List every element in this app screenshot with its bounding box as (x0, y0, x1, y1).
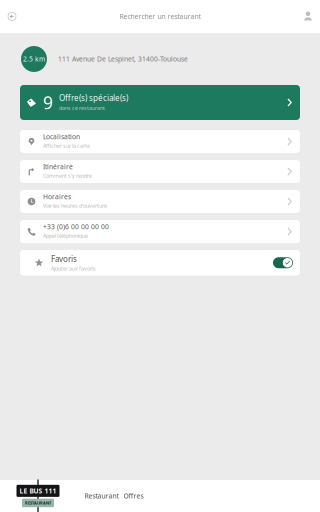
staticText: RESTAURANT (25, 500, 51, 506)
button[interactable]: 9 (20, 85, 300, 123)
staticText: Localisation (43, 132, 80, 141)
staticText: Voir les heures d'ouverture (43, 202, 107, 209)
staticText: Ajouter aux favoris (51, 265, 96, 272)
staticText: Restaurant (84, 492, 118, 500)
button[interactable]: Localisation (20, 130, 300, 153)
staticText: 111 Avenue De Lespinet, 31400-Toulouse (58, 55, 188, 63)
staticText: Offres (123, 492, 143, 500)
staticText: 9 (43, 91, 53, 114)
staticText: Horaires (43, 192, 71, 201)
staticText: 2.5 km (23, 55, 45, 63)
staticText: Offre(s) spéciale(s) (59, 92, 128, 103)
staticText: Itinéraire (43, 162, 73, 171)
staticText: LE BUS 111 (19, 486, 56, 495)
staticText: Rechercher un restaurant (119, 12, 200, 21)
button[interactable]: Restaurant (82, 484, 121, 508)
staticText: dans ce restaurant (59, 104, 105, 111)
staticText: +33 (0)6 00 00 00 00 (43, 222, 109, 231)
button[interactable]: Offres (121, 484, 146, 508)
button[interactable]: Horaires (20, 190, 300, 213)
button[interactable]: Favoris (20, 250, 300, 275)
button[interactable]: Back (0, 4, 24, 28)
button[interactable]: Le Bus 111 (18, 479, 58, 512)
staticText: Afficher sur la carte (43, 142, 90, 149)
staticText: Appel téléphonique (43, 232, 88, 239)
button[interactable]: Itinéraire (20, 160, 300, 183)
button[interactable]: Account (296, 4, 320, 28)
button[interactable]: +33 (0)6 00 00 00 00 (20, 220, 300, 243)
staticText: Favoris (51, 254, 77, 264)
staticText: Comment s'y rendre (43, 172, 92, 179)
